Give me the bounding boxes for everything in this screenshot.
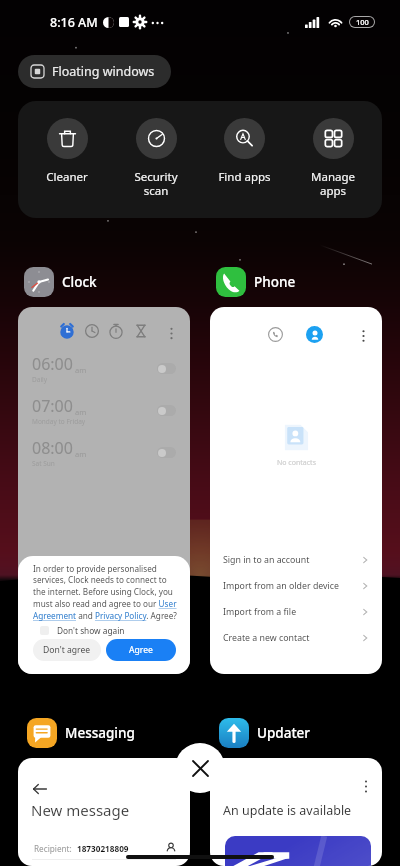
button[interactable]: More options [357, 777, 375, 795]
staticText: An update is available [223, 802, 352, 819]
button[interactable]: Back [27, 776, 52, 801]
staticText: am [75, 449, 87, 459]
button[interactable]: Sign in to an account [210, 547, 382, 573]
button[interactable]: 07:00 [32, 389, 176, 431]
staticText: Agree [129, 644, 153, 656]
staticText: 07:00 [32, 395, 73, 417]
button[interactable]: Import from a file [210, 599, 382, 625]
button[interactable]: Phone [216, 267, 296, 297]
button[interactable]: Import from an older device [210, 573, 382, 599]
button[interactable] [157, 363, 176, 374]
staticText: Clock [62, 273, 97, 291]
button[interactable]: Manage apps [293, 118, 373, 199]
staticText: Floating windows [52, 63, 155, 80]
button[interactable]: Security scan [116, 118, 196, 199]
button[interactable]: More options [210, 758, 382, 866]
staticText: Cleaner [46, 169, 88, 185]
staticText: Don't agree [43, 644, 91, 656]
staticText: 06:00 [32, 353, 73, 375]
staticText: Recipient: [34, 843, 72, 854]
button[interactable]: Alarm [18, 307, 190, 674]
staticText: Don't show again [57, 625, 125, 636]
button[interactable]: Alarm [59, 323, 75, 339]
button[interactable]: Floating windows [18, 55, 171, 88]
button[interactable]: Back [18, 758, 190, 866]
staticText: Import from an older device [223, 580, 340, 592]
staticText: Messaging [65, 724, 135, 742]
button[interactable]: Agree [106, 639, 176, 661]
staticText: Import from a file [223, 606, 297, 618]
button[interactable] [157, 447, 176, 458]
staticText: Security scan [134, 169, 178, 199]
staticText: am [75, 407, 87, 417]
button[interactable]: Recents [267, 326, 284, 343]
button[interactable]: Clock [24, 267, 97, 297]
staticText: Find apps [218, 169, 271, 185]
button[interactable]: Updater [219, 718, 311, 748]
staticText: No contacts [277, 458, 316, 468]
staticText: Updater [257, 724, 311, 742]
staticText: am [75, 365, 87, 375]
staticText: Phone [254, 273, 296, 291]
button[interactable]: Don't show again [33, 625, 125, 636]
staticText: 18730218809 [77, 843, 129, 854]
button[interactable] [157, 405, 176, 416]
staticText: Monday to Friday [32, 417, 86, 426]
button[interactable]: Don't agree [33, 639, 101, 661]
button[interactable]: Create a new contact [210, 625, 382, 651]
button[interactable]: Recents [210, 307, 382, 674]
staticText: 100 [356, 17, 369, 27]
staticText: In order to provide personalised service… [33, 563, 177, 622]
button[interactable]: Cleaner [27, 118, 107, 185]
button[interactable]: Messaging [27, 718, 135, 748]
button[interactable]: Stopwatch [108, 323, 124, 339]
staticText: Sat Sun [32, 459, 55, 468]
staticText: 8:16 AM [50, 14, 98, 31]
staticText: Sign in to an account [223, 554, 310, 566]
staticText: New message [31, 800, 130, 820]
button[interactable]: Timer [133, 323, 149, 339]
button[interactable]: Find apps [204, 118, 284, 185]
button[interactable]: Contacts [306, 326, 323, 343]
button[interactable]: 06:00 [32, 347, 176, 389]
staticText: Manage apps [311, 169, 355, 199]
staticText: Create a new contact [223, 632, 310, 644]
staticText: Daily [32, 375, 48, 384]
staticText: 08:00 [32, 437, 73, 459]
button[interactable]: 08:00 [32, 431, 176, 473]
button[interactable]: Clock [84, 323, 100, 339]
button[interactable]: Close all [175, 743, 225, 793]
